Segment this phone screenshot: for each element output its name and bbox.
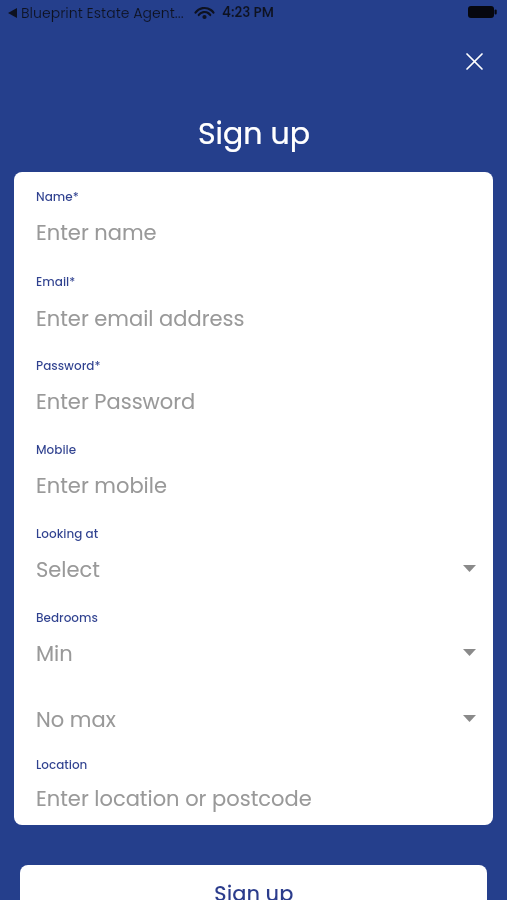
staticText: Enter email address [36,304,245,333]
button[interactable]: Enter name [14,218,493,248]
button[interactable]: Enter Password [14,387,493,417]
staticText: Enter name [36,218,157,247]
staticText: Sign up [198,113,310,155]
staticText: Blueprint Estate Agent... [21,3,184,23]
button[interactable]: Enter email address [14,304,493,334]
staticText: Enter Password [36,387,196,416]
staticText: Password* [36,357,101,374]
button[interactable]: Select [14,555,493,585]
staticText: Enter location or postcode [36,784,312,813]
staticText: Location [36,756,88,773]
staticText: 4:23 PM [222,3,274,22]
button[interactable]: Min [14,639,493,669]
staticText: Sign up [214,879,294,900]
button[interactable]: Enter mobile [14,471,493,501]
button[interactable]: Enter location or postcode [14,784,493,814]
button[interactable]: Sign up [20,865,487,900]
staticText: Mobile [36,441,77,458]
button[interactable]: No max [14,705,493,735]
staticText: Name* [36,188,79,205]
button[interactable] [458,45,490,77]
staticText: No max [36,705,116,734]
staticText: Enter mobile [36,471,167,500]
staticText: Bedrooms [36,609,98,626]
staticText: Min [36,639,73,668]
staticText: Email* [36,273,76,290]
staticText: Select [36,555,100,584]
staticText: Looking at [36,525,99,542]
